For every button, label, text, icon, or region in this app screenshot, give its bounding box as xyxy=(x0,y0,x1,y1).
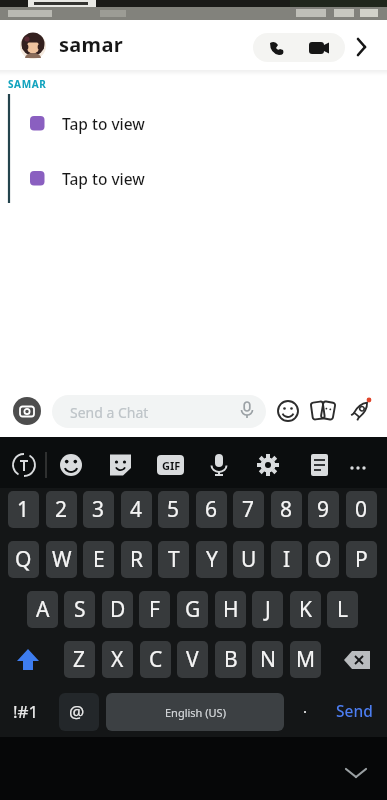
staticText: X xyxy=(111,645,124,674)
staticText: Tap to view xyxy=(62,168,145,189)
staticText: Q xyxy=(15,545,32,574)
staticText: Z xyxy=(73,645,86,674)
staticText: 4 xyxy=(130,495,143,524)
staticText: 3 xyxy=(92,495,105,524)
staticText: 8 xyxy=(280,495,293,524)
staticText: SAMAR xyxy=(8,77,47,91)
staticText: B xyxy=(224,645,238,674)
staticText: samar xyxy=(59,31,123,58)
staticText: H xyxy=(223,595,239,624)
staticText: S xyxy=(74,595,86,624)
staticText: 5 xyxy=(167,495,180,524)
staticText: Send a Chat xyxy=(70,403,149,422)
staticText: M xyxy=(296,645,316,674)
staticText: G xyxy=(185,595,201,624)
staticText: V xyxy=(186,645,199,674)
staticText: A xyxy=(36,595,50,624)
staticText: Send xyxy=(336,700,373,721)
staticText: Y xyxy=(206,545,218,574)
staticText: O xyxy=(315,545,332,574)
staticText: K xyxy=(299,595,312,624)
staticText: I xyxy=(283,545,291,574)
staticText: 6 xyxy=(205,495,218,524)
staticText: Tap to view xyxy=(62,113,145,134)
staticText: 7 xyxy=(242,495,255,524)
staticText: U xyxy=(241,545,257,574)
staticText: J xyxy=(265,595,271,624)
staticText: F xyxy=(149,595,160,624)
staticText: English (US) xyxy=(165,705,226,720)
staticText: E xyxy=(93,545,105,574)
staticText: R xyxy=(130,545,144,574)
staticText: C xyxy=(149,645,163,674)
staticText: @ xyxy=(69,700,85,723)
staticText: !#1 xyxy=(13,700,39,723)
staticText: 0 xyxy=(355,495,368,524)
staticText: 1 xyxy=(17,495,30,524)
staticText: T xyxy=(168,545,180,574)
staticText: P xyxy=(355,545,368,574)
staticText: 9 xyxy=(317,495,330,524)
staticText: N xyxy=(260,645,276,674)
staticText: . xyxy=(303,697,308,717)
staticText: D xyxy=(110,595,126,624)
staticText: L xyxy=(337,595,349,624)
staticText: 2 xyxy=(55,495,68,524)
staticText: W xyxy=(52,545,72,574)
staticText: GIF xyxy=(162,458,181,473)
